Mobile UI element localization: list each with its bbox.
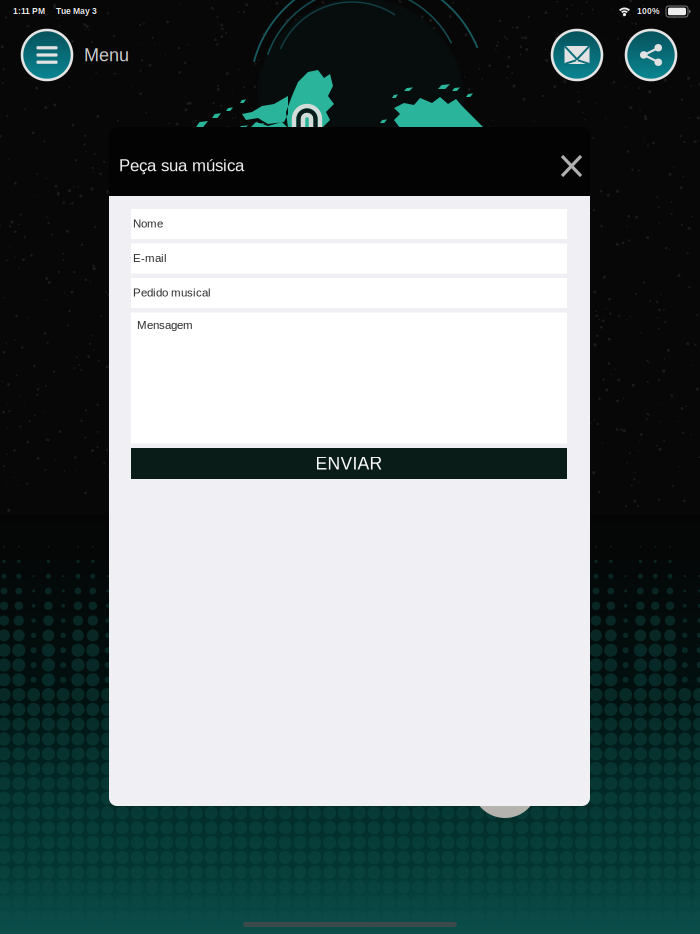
staticText: 100% <box>637 6 660 16</box>
staticText: Peça sua música <box>119 156 244 175</box>
button[interactable]: Close <box>553 147 590 185</box>
button[interactable]: Mail <box>551 29 603 81</box>
staticText: Mensagem <box>137 318 193 331</box>
staticText: Pedido musical <box>133 286 211 299</box>
staticText: Tue May 3 <box>56 6 97 16</box>
button[interactable]: Menu <box>21 29 129 81</box>
button[interactable]: ENVIAR <box>131 448 567 479</box>
staticText: Nome <box>133 217 163 230</box>
staticText: E-mail <box>133 251 167 264</box>
staticText: Menu <box>84 45 129 65</box>
button[interactable]: Share <box>625 29 677 81</box>
staticText: 1:11 PM <box>13 6 45 16</box>
staticText: ENVIAR <box>315 454 382 473</box>
